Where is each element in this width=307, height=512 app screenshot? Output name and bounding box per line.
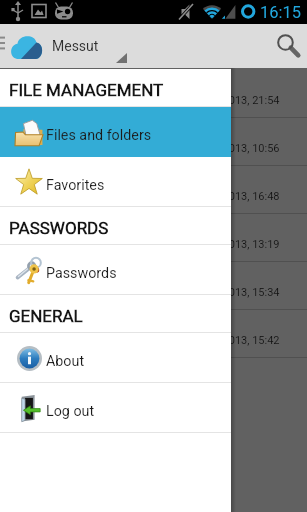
button[interactable]: Open navigation drawer (0, 24, 12, 68)
staticText: FILE MANAGEMENT (9, 80, 164, 100)
button[interactable]: Search (269, 24, 307, 68)
staticText: Praesentation.ppt (12, 268, 123, 284)
staticText: 28.04.2013, 15:34 (192, 286, 280, 299)
staticText: Messebericht.pdf (12, 76, 121, 92)
button[interactable]: Passwords (0, 245, 231, 295)
staticText: Files and folders (46, 127, 152, 144)
button[interactable]: Notizen Q2.docx (0, 118, 307, 166)
staticText: 02.05.2013, 13:19 (192, 238, 280, 251)
button[interactable]: About (0, 333, 231, 383)
button[interactable]: Messebericht.pdf (0, 70, 307, 118)
button[interactable]: Log out (0, 383, 231, 433)
button[interactable]: Files and folders (0, 107, 231, 157)
staticText: Beleg Scan.jpg (12, 220, 105, 236)
staticText: Reiseplan.xlsx (12, 172, 101, 188)
button[interactable]: Favorites (0, 157, 231, 207)
button[interactable]: Archiv.zip (0, 310, 307, 358)
button[interactable]: Praesentation.ppt (0, 262, 307, 310)
staticText: 21.04.2013, 15:42 (192, 334, 280, 347)
staticText: GENERAL (9, 306, 83, 326)
button[interactable]: Beleg Scan.jpg (0, 214, 307, 262)
staticText: Archiv.zip (12, 316, 73, 332)
staticText: PASSWORDS (9, 218, 109, 238)
staticText: About (46, 353, 85, 370)
staticText: Messut (52, 38, 99, 54)
button[interactable]: Reiseplan.xlsx (0, 166, 307, 214)
staticText: Favorites (46, 177, 105, 194)
staticText: Passwords (46, 265, 117, 282)
staticText: 12.05.2013, 16:48 (192, 190, 280, 203)
staticText: Notizen Q2.docx (12, 124, 115, 140)
staticText: Log out (46, 403, 95, 420)
staticText: 18.05.2013, 10:56 (192, 142, 280, 155)
staticText: 21.05.2013, 21:54 (192, 94, 280, 107)
staticText: 16:15 (260, 3, 302, 22)
